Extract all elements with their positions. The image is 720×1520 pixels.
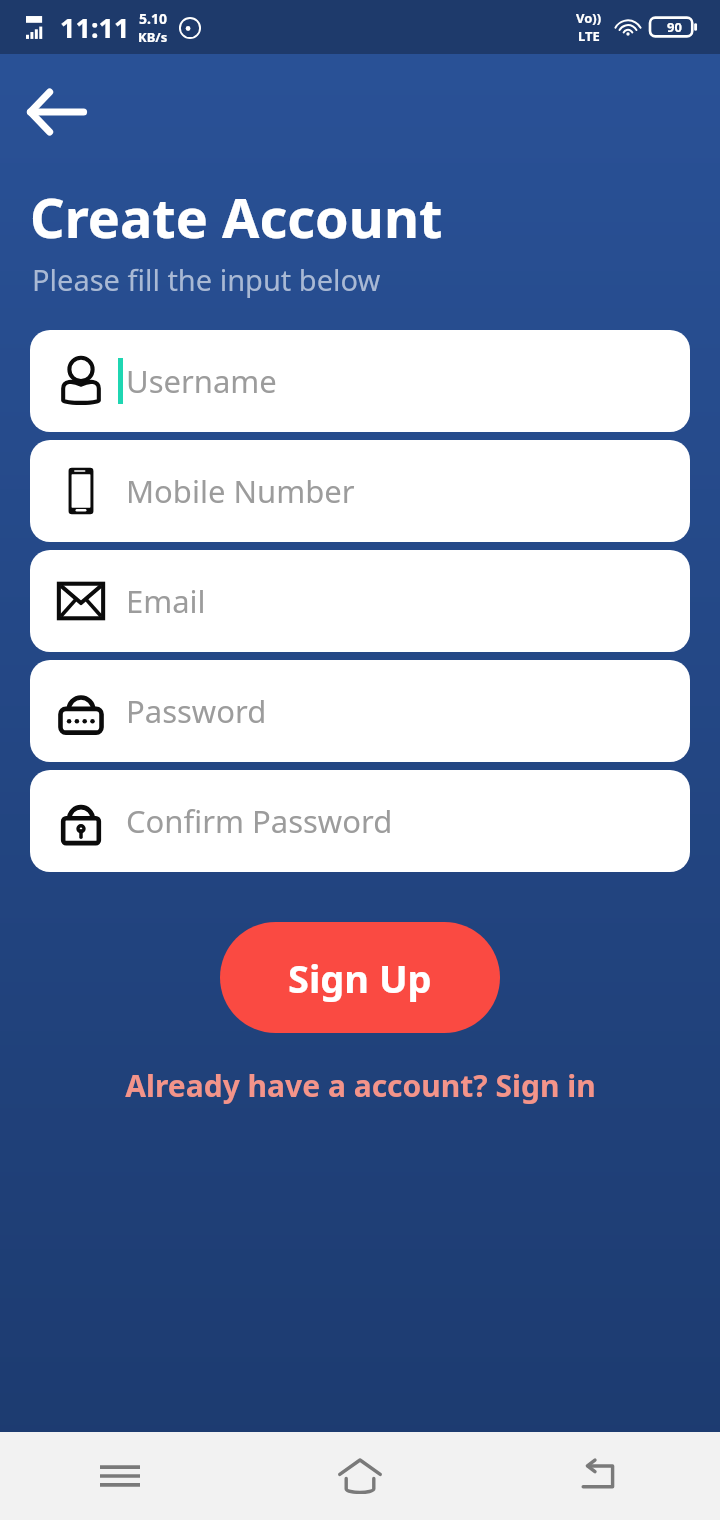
button[interactable]: Confirm Password xyxy=(30,770,690,872)
button[interactable]: Username xyxy=(30,330,690,432)
button[interactable]: Email xyxy=(30,550,690,652)
staticText: Create Account xyxy=(30,180,443,254)
button[interactable]: Password xyxy=(30,660,690,762)
staticText: Already have a account? Sign in xyxy=(125,1065,596,1106)
staticText: 11:11 xyxy=(60,9,130,46)
button[interactable]: Already have a account? Sign in xyxy=(113,1059,608,1112)
button[interactable]: Sign Up xyxy=(220,922,500,1033)
button[interactable]: Recent apps xyxy=(72,1440,168,1512)
staticText: Mobile Number xyxy=(126,470,355,512)
staticText: Username xyxy=(126,360,277,402)
staticText: Confirm Password xyxy=(126,800,393,842)
staticText: Please fill the input below xyxy=(32,260,381,299)
staticText: Sign Up xyxy=(288,952,432,1004)
button[interactable]: Home xyxy=(312,1440,408,1512)
staticText: KB/s xyxy=(138,28,168,46)
staticText: Password xyxy=(126,690,267,732)
staticText: LTE xyxy=(578,27,600,45)
staticText: 5.10 xyxy=(139,9,167,28)
staticText: 90 xyxy=(667,18,682,36)
button[interactable]: Back xyxy=(552,1440,648,1512)
button[interactable]: Mobile Number xyxy=(30,440,690,542)
button[interactable]: Back xyxy=(26,86,90,136)
staticText: Vo)) xyxy=(576,9,602,27)
staticText: Email xyxy=(126,580,206,622)
